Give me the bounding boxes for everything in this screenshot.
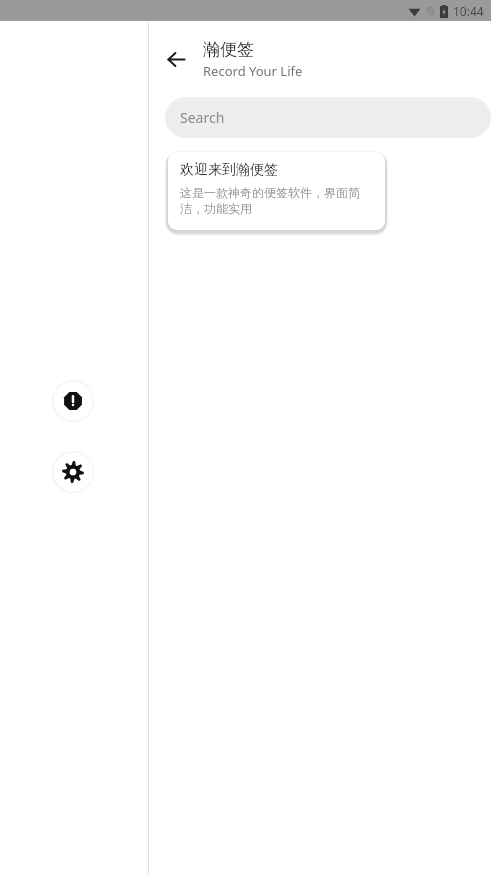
staticText: 这是一款神奇的便签软件，界面简洁，功能实用: [180, 185, 375, 217]
button[interactable]: Back: [156, 39, 196, 79]
staticText: Search: [180, 108, 225, 127]
staticText: 瀚便签: [203, 39, 254, 60]
button[interactable]: Search: [165, 97, 491, 138]
button[interactable]: 欢迎来到瀚便签: [168, 152, 385, 230]
staticText: 10:44: [453, 3, 484, 19]
button[interactable]: Info: [52, 380, 94, 422]
staticText: Record Your Life: [203, 62, 303, 80]
button[interactable]: Settings: [52, 451, 94, 493]
staticText: 欢迎来到瀚便签: [180, 161, 278, 179]
